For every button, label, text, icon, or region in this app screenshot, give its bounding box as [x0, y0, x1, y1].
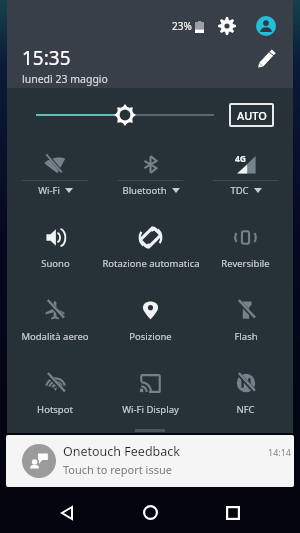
button[interactable]: Bluetooth — [103, 140, 198, 213]
staticText: Bluetooth — [122, 184, 167, 197]
button[interactable]: Reversibile — [198, 213, 293, 286]
button[interactable]: Onetouch Feedback — [6, 435, 294, 487]
button[interactable]: Flash — [198, 286, 293, 359]
staticText: Hotspot — [37, 403, 73, 416]
button[interactable]: Hotspot — [7, 359, 103, 432]
button[interactable]: AUTO — [229, 103, 274, 127]
staticText: Wi-Fi Display — [122, 403, 179, 416]
button[interactable]: Recent apps — [213, 493, 253, 533]
staticText: 4G — [235, 153, 247, 165]
staticText: Posizione — [129, 330, 172, 343]
button[interactable]: Home — [130, 492, 170, 532]
button[interactable]: NFC — [198, 359, 293, 432]
button[interactable]: Posizione — [103, 286, 198, 359]
staticText: NFC — [236, 403, 255, 416]
staticText: Suono — [41, 257, 70, 270]
button[interactable]: Settings — [218, 17, 236, 35]
button[interactable]: Edit — [257, 49, 276, 68]
staticText: AUTO — [237, 108, 267, 123]
staticText: Onetouch Feedback — [63, 443, 180, 460]
button[interactable]: Suono — [7, 213, 103, 286]
staticText: lunedì 23 maggio — [22, 72, 108, 86]
button[interactable]: User account — [256, 16, 276, 36]
staticText: Touch to report issue — [63, 462, 172, 477]
button[interactable]: Modalità aereo — [7, 286, 103, 359]
staticText: 15:35 — [22, 45, 71, 71]
button[interactable]: Back — [47, 493, 87, 533]
staticText: Rotazione automatica — [102, 257, 200, 270]
staticText: Modalità aereo — [21, 330, 89, 343]
staticText: 14:14 — [268, 446, 292, 458]
staticText: TDC — [230, 184, 249, 197]
staticText: Wi-Fi — [38, 184, 60, 197]
staticText: 23% — [172, 19, 192, 33]
button[interactable]: 4G — [198, 140, 293, 213]
button[interactable]: Wi-Fi — [7, 140, 103, 213]
button[interactable]: Rotazione automatica — [103, 213, 198, 286]
button[interactable]: Wi-Fi Display — [103, 359, 198, 432]
staticText: Flash — [234, 330, 258, 343]
staticText: Reversibile — [221, 257, 270, 270]
